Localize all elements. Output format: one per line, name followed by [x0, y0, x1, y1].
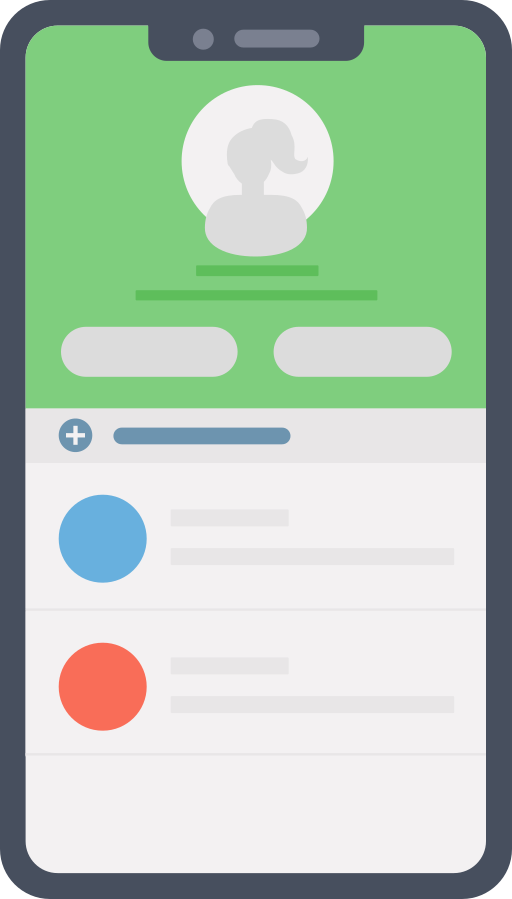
button[interactable]: Conversation 2	[26, 611, 486, 756]
button[interactable]: Follow	[61, 327, 238, 377]
button[interactable]: Conversation 1	[26, 463, 486, 608]
button[interactable]: Add	[59, 418, 92, 452]
button[interactable]: Message	[274, 327, 452, 377]
